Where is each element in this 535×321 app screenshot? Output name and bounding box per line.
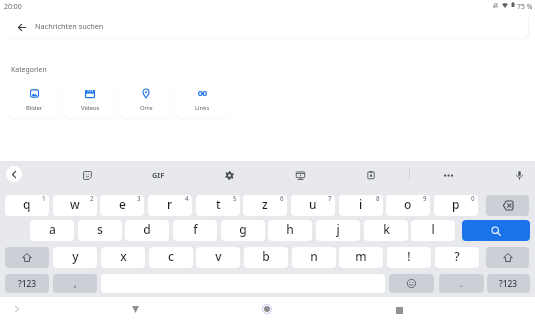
button[interactable]: w [53,195,97,216]
staticText: u [309,196,317,212]
staticText: 1 [42,195,46,202]
button[interactable]: p [434,195,478,216]
staticText: , [74,277,77,289]
button[interactable]: ? [435,247,479,268]
staticText: 0 [471,195,475,202]
button[interactable]: Search [462,220,530,241]
button[interactable]: Back [7,15,528,38]
button[interactable]: z [243,195,287,216]
button[interactable]: x [101,247,145,268]
button[interactable]: Stickers [77,165,97,185]
staticText: Nachrichten suchen [35,21,104,31]
button[interactable]: f [173,220,217,241]
button[interactable]: GIF [147,165,169,184]
staticText: o [404,196,412,212]
staticText: 75 % [517,2,533,11]
button[interactable]: Voice input [509,165,529,185]
staticText: g [239,221,247,237]
button[interactable]: i [339,195,383,216]
button[interactable]: t [196,195,240,216]
button[interactable]: m [339,247,383,268]
button[interactable]: Clipboard [361,165,381,185]
staticText: Videos [81,104,100,112]
staticText: l [431,221,435,237]
staticText: j [336,221,340,237]
staticText: y [72,248,79,264]
staticText: s [97,221,103,237]
staticText: b [262,248,270,264]
button[interactable]: o [386,195,430,216]
staticText: x [120,248,127,264]
button[interactable]: c [149,247,193,268]
button[interactable]: Settings [219,165,239,185]
staticText: ! [407,248,411,264]
button[interactable]: Shift [486,247,529,268]
button[interactable]: n [292,247,336,268]
staticText: c [168,248,174,264]
button[interactable]: , [53,274,97,293]
button[interactable]: Recent apps [389,300,409,320]
button[interactable]: Back [125,299,145,319]
staticText: t [216,196,221,212]
button[interactable]: Back [13,18,31,36]
button[interactable]: u [291,195,335,216]
button[interactable]: b [244,247,288,268]
staticText: p [452,196,460,212]
staticText: h [286,221,294,237]
button[interactable]: Emoji [389,274,434,293]
button[interactable]: ?123 [5,274,49,293]
staticText: f [193,221,198,237]
staticText: n [310,248,318,264]
staticText: ? [454,248,460,264]
button[interactable]: a [30,220,74,241]
button[interactable]: d [125,220,169,241]
staticText: 8 [376,195,380,202]
staticText: w [70,196,80,212]
staticText: 20:00 [4,2,22,11]
staticText: d [143,221,151,237]
button[interactable]: h [268,220,312,241]
button[interactable]: v [196,247,240,268]
button[interactable]: Home [257,299,277,319]
button[interactable]: Hide keyboard [7,299,27,319]
button[interactable]: ! [387,247,431,268]
button[interactable]: Present [290,165,310,185]
button[interactable]: Links [176,81,228,118]
button[interactable]: g [221,220,265,241]
staticText: Kategorien [11,65,47,74]
staticText: 4 [185,195,189,202]
button[interactable]: . [439,274,484,293]
staticText: ?123 [18,278,37,289]
staticText: k [383,221,390,237]
button[interactable]: k [364,220,408,241]
button[interactable]: e [100,195,144,216]
staticText: 2 [90,195,94,202]
button[interactable]: s [78,220,122,241]
staticText: Orte [140,104,153,112]
button[interactable]: q [5,195,49,216]
button[interactable]: y [53,247,97,268]
button[interactable]: Videos [64,81,116,118]
staticText: r [167,196,173,212]
button[interactable]: r [148,195,192,216]
button[interactable]: Bilder [8,81,60,118]
staticText: 3 [137,195,141,202]
staticText: q [23,196,31,212]
button[interactable]: Collapse toolbar [6,166,22,182]
staticText: a [49,221,56,237]
button[interactable]: l [411,220,455,241]
staticText: 6 [280,195,284,202]
button[interactable]: More options [438,165,458,185]
staticText: . [460,277,463,289]
staticText: v [215,248,222,264]
staticText: 9 [423,195,427,202]
staticText: Links [195,104,210,112]
button[interactable]: Backspace [486,195,529,216]
staticText: i [359,196,363,212]
staticText: m [355,248,367,264]
button[interactable]: Orte [120,81,172,118]
button[interactable]: ?123 [487,274,530,293]
button[interactable]: j [316,220,360,241]
button[interactable]: Shift [5,247,49,268]
